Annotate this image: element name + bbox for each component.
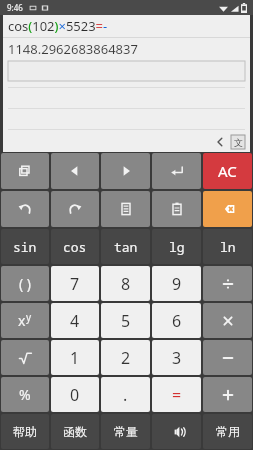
staticText: 1148.2962683864837 (8, 40, 138, 58)
button[interactable]: 6 (152, 303, 201, 338)
staticText: 0 (70, 384, 80, 406)
button[interactable]: Undo (1, 191, 49, 227)
staticText: 1 (70, 347, 80, 369)
button[interactable]: ln (203, 229, 252, 264)
staticText: sin (13, 238, 37, 256)
button[interactable]: ( ) (1, 266, 49, 301)
button[interactable]: . (101, 377, 150, 412)
button[interactable]: 9 (152, 266, 201, 301)
button[interactable]: x (1, 303, 49, 338)
button[interactable]: lg (152, 229, 201, 264)
button[interactable]: Language (230, 134, 246, 150)
button[interactable]: Paste (152, 191, 201, 227)
button[interactable]: 7 (51, 266, 99, 301)
button[interactable]: % (1, 377, 49, 412)
button[interactable]: Enter (152, 153, 201, 189)
staticText: 2 (121, 347, 131, 369)
staticText: 5 (121, 310, 131, 332)
staticText: 8 (121, 273, 131, 295)
staticText: AC (218, 161, 237, 181)
button[interactable]: = (152, 377, 201, 412)
button[interactable]: Back (212, 134, 228, 150)
button[interactable] (8, 61, 245, 81)
staticText: y (26, 310, 32, 324)
button[interactable]: 帮助 (1, 414, 49, 449)
button[interactable]: Divide (203, 266, 252, 301)
staticText: ( ) (19, 274, 32, 293)
staticText: = (172, 384, 182, 406)
button[interactable]: AC (203, 153, 252, 189)
staticText: 常量 (114, 424, 138, 439)
staticText: 文 (234, 137, 243, 148)
staticText: 3 (172, 347, 182, 369)
button[interactable]: 常量 (101, 414, 150, 449)
staticText: 帮助 (13, 424, 37, 439)
button[interactable]: Root (1, 340, 49, 375)
button[interactable]: Copy (101, 191, 150, 227)
button[interactable]: tan (101, 229, 150, 264)
staticText: x (18, 311, 26, 330)
staticText: cos (63, 238, 87, 256)
staticText: 9:46 (7, 2, 23, 13)
button[interactable]: Sound (152, 414, 201, 449)
button[interactable]: Redo (51, 191, 99, 227)
button[interactable]: Move right (101, 153, 150, 189)
staticText: 7 (70, 273, 80, 295)
button[interactable]: 函数 (51, 414, 99, 449)
button[interactable]: History (1, 153, 49, 189)
button[interactable]: Minus (203, 340, 252, 375)
staticText: 9 (172, 273, 182, 295)
staticText: 6 (172, 310, 182, 332)
staticText: cos(102)×5523=- (8, 17, 108, 35)
staticText: tan (114, 238, 138, 256)
button[interactable]: Plus (203, 377, 252, 412)
staticText: lg (169, 238, 185, 256)
button[interactable]: 0 (51, 377, 99, 412)
button[interactable]: 常用 (203, 414, 252, 449)
button[interactable]: Backspace (203, 191, 252, 227)
button[interactable]: Multiply (203, 303, 252, 338)
staticText: % (19, 385, 31, 404)
staticText: 函数 (63, 424, 87, 439)
staticText: 常用 (216, 424, 240, 439)
button[interactable]: 2 (101, 340, 150, 375)
staticText: . (123, 384, 128, 406)
staticText: 4 (70, 310, 80, 332)
button[interactable]: sin (1, 229, 49, 264)
button[interactable]: 1 (51, 340, 99, 375)
button[interactable]: 8 (101, 266, 150, 301)
button[interactable]: 5 (101, 303, 150, 338)
button[interactable]: 4 (51, 303, 99, 338)
button[interactable]: 3 (152, 340, 201, 375)
button[interactable]: Move left (51, 153, 99, 189)
button[interactable]: cos (51, 229, 99, 264)
staticText: ln (220, 238, 236, 256)
